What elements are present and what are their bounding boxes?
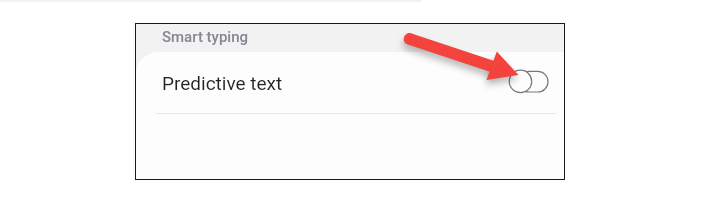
- button[interactable]: Predictive text: [136, 52, 564, 110]
- staticText: Smart typing: [162, 28, 249, 46]
- staticText: Predictive text: [162, 72, 283, 94]
- button[interactable]: Predictive text toggle: [507, 67, 553, 95]
